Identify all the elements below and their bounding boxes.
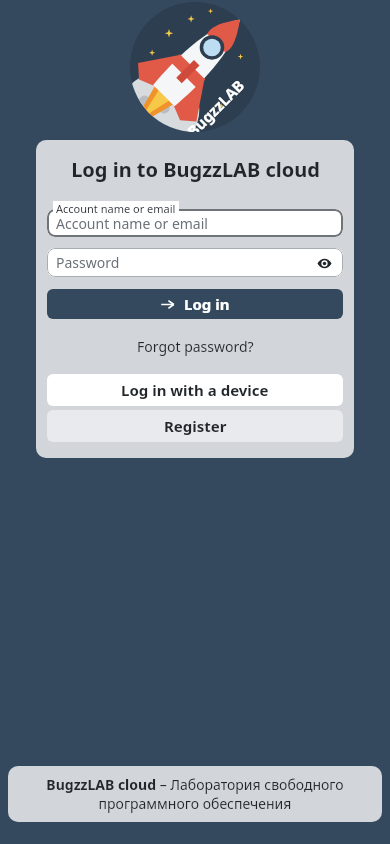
staticText: Password — [56, 253, 314, 272]
staticText: Forgot password? — [137, 337, 254, 356]
button[interactable]: Password — [47, 248, 343, 277]
button[interactable]: Log in — [47, 289, 343, 319]
button[interactable]: Show password — [314, 253, 334, 273]
staticText: Log in with a device — [121, 380, 269, 400]
staticText: BugzzLAB — [183, 75, 248, 132]
staticText: Register — [164, 416, 227, 436]
button[interactable]: Account name or email — [47, 209, 343, 237]
button[interactable]: BugzzLAB cloud – Лаборатория свободного … — [8, 766, 382, 822]
staticText: BugzzLAB cloud – Лаборатория свободного … — [22, 775, 368, 813]
staticText: Account name or email — [56, 214, 208, 233]
staticText: Account name or email — [56, 201, 176, 216]
staticText: Log in to BugzzLAB cloud — [71, 156, 320, 183]
staticText: Log in — [184, 294, 230, 314]
button[interactable]: Log in with a device — [47, 374, 343, 406]
button[interactable]: Forgot password? — [133, 335, 258, 358]
button[interactable]: Register — [47, 410, 343, 442]
